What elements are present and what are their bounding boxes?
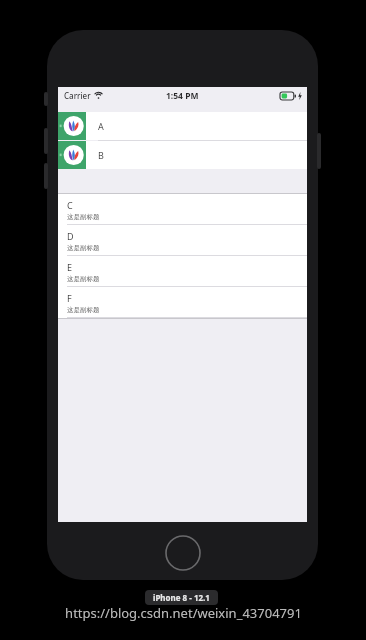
button[interactable]: F [58, 287, 307, 318]
staticText: C [67, 199, 73, 211]
staticText: D [67, 230, 74, 242]
button[interactable]: B [58, 141, 307, 169]
button[interactable]: D [58, 225, 307, 256]
staticText: B [98, 149, 104, 161]
staticText: A [98, 120, 104, 132]
button[interactable]: Home [165, 535, 201, 571]
staticText: 这是副标题 [67, 213, 100, 221]
button[interactable]: A [58, 112, 307, 140]
staticText: iPhone 8 - 12.1 [153, 592, 210, 603]
staticText: F [67, 292, 72, 304]
staticText: Carrier [64, 90, 91, 101]
staticText: 这是副标题 [67, 275, 100, 283]
staticText: 这是副标题 [67, 244, 100, 252]
staticText: E [67, 261, 73, 273]
button[interactable]: E [58, 256, 307, 287]
staticText: 1:54 PM [166, 90, 199, 102]
button[interactable]: C [58, 194, 307, 225]
staticText: 这是副标题 [67, 306, 100, 314]
staticText: https://blog.csdn.net/weixin_43704791 [65, 604, 302, 622]
